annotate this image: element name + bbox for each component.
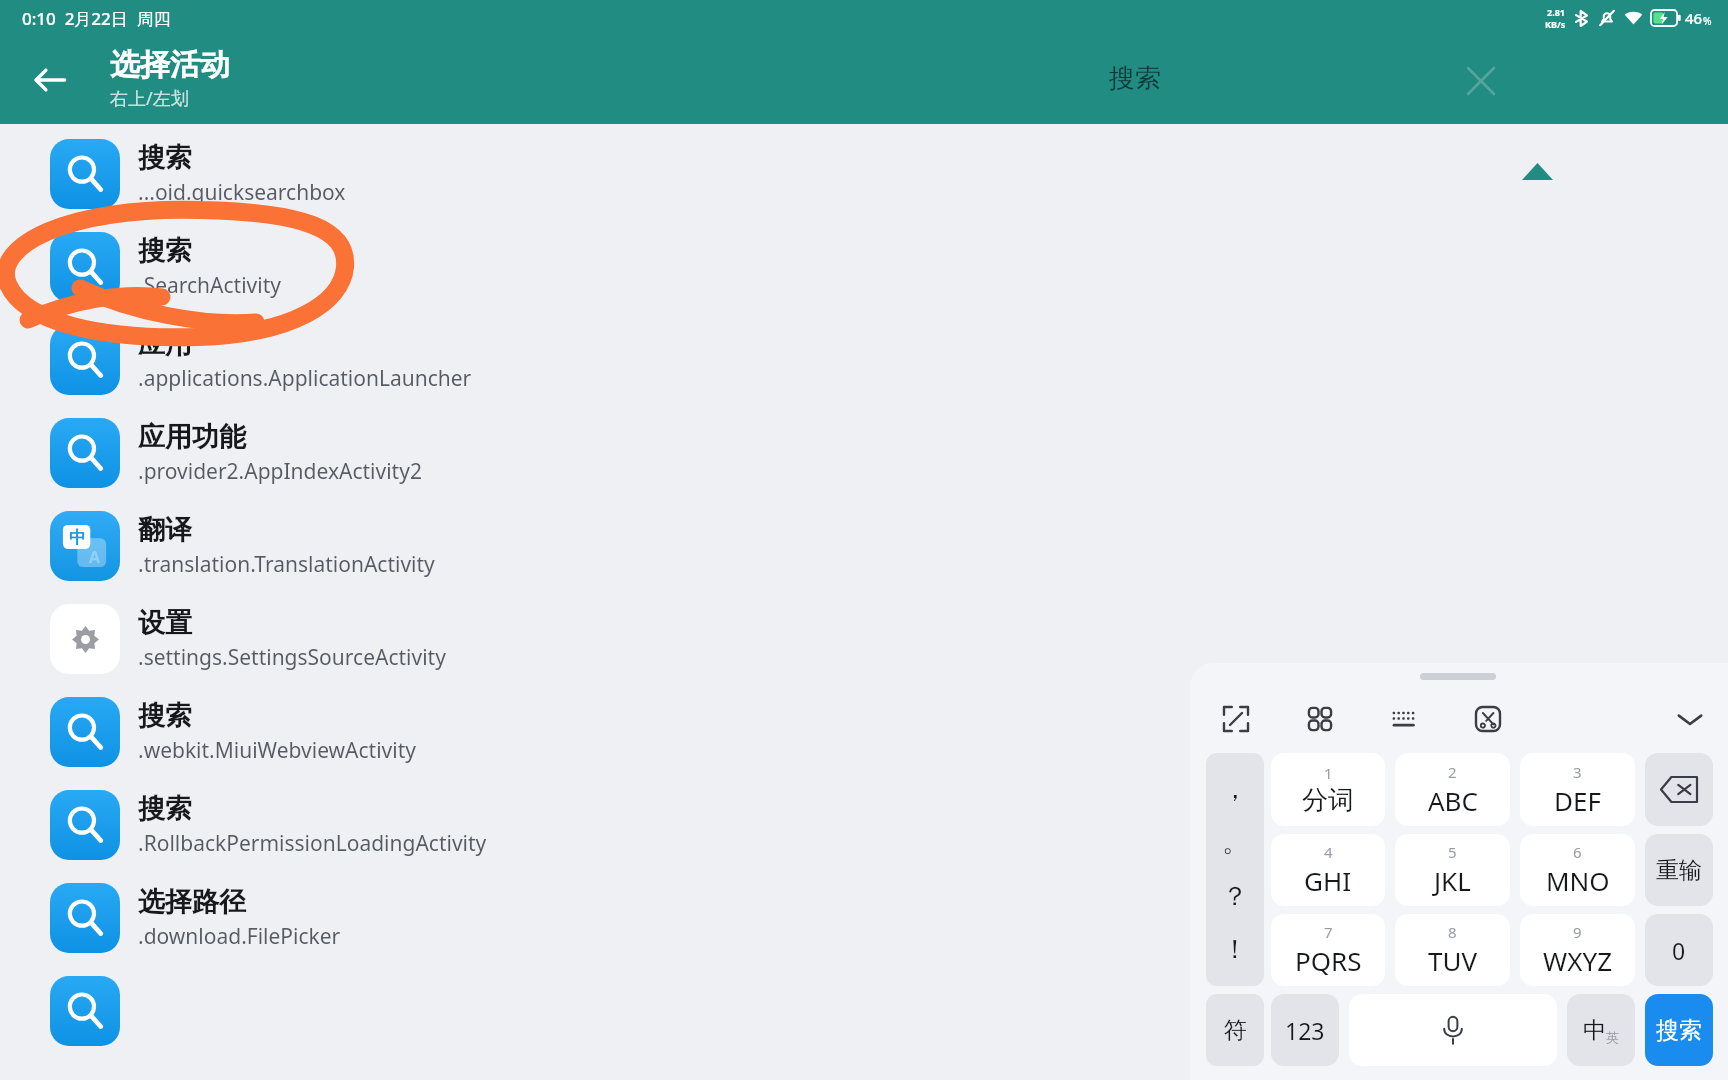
staticText: 搜索 <box>138 234 192 268</box>
staticText: .settings.SettingsSourceActivity <box>138 643 446 672</box>
button[interactable]: Voice input <box>1349 994 1557 1066</box>
button[interactable]: 8 <box>1395 914 1510 986</box>
staticText: % <box>1703 14 1712 28</box>
staticText: 6 <box>1573 842 1582 862</box>
staticText: 7 <box>1324 922 1333 942</box>
staticText: 搜索 <box>1109 62 1161 95</box>
button[interactable]: ， <box>1206 753 1264 986</box>
staticText: A <box>89 546 101 568</box>
staticText: 搜索 <box>138 699 192 733</box>
button[interactable]: 应用 <box>0 313 1728 406</box>
staticText: 搜索 <box>1656 1016 1702 1045</box>
button[interactable]: 6 <box>1520 834 1635 906</box>
staticText: 搜索 <box>138 792 192 826</box>
button[interactable]: Keyboard panels <box>1298 697 1342 741</box>
staticText: JKL <box>1434 863 1471 898</box>
button[interactable]: 应用功能 <box>0 406 1728 499</box>
staticText: 9 <box>1573 922 1582 942</box>
staticText: 选择活动 <box>110 46 230 84</box>
button[interactable]: 重输 <box>1645 834 1713 906</box>
staticText: 1 <box>1324 763 1333 783</box>
staticText: 3 <box>1573 762 1582 782</box>
staticText: .RollbackPermissionLoadingActivity <box>138 829 487 858</box>
staticText: 英 <box>1606 1029 1619 1045</box>
staticText: .provider2.AppIndexActivity2 <box>138 457 422 486</box>
staticText: 中 <box>1583 1016 1606 1045</box>
button[interactable]: 搜索 <box>0 127 1728 220</box>
button[interactable]: 选择路径 <box>0 871 1728 964</box>
button[interactable]: 0 <box>1645 914 1713 986</box>
staticText: ？ <box>1222 880 1248 913</box>
staticText: 5 <box>1448 842 1457 862</box>
button[interactable]: Backspace <box>1645 753 1713 826</box>
staticText: 重输 <box>1656 856 1702 885</box>
staticText: TUV <box>1428 943 1478 978</box>
button[interactable]: 7 <box>1271 914 1385 986</box>
button[interactable]: 中 <box>0 499 1728 592</box>
button[interactable]: 3 <box>1520 753 1635 826</box>
staticText: MNO <box>1546 863 1610 898</box>
staticText: ！ <box>1222 933 1248 966</box>
staticText: 选择路径 <box>138 885 246 919</box>
staticText: .applications.ApplicationLauncher <box>138 364 472 393</box>
button[interactable]: 符 <box>1206 994 1264 1066</box>
button[interactable]: 4 <box>1271 834 1385 906</box>
button[interactable]: 搜索 <box>0 220 1728 313</box>
staticText: PQRS <box>1295 943 1362 978</box>
button[interactable]: 搜索 <box>0 685 1728 778</box>
staticText: 搜索 <box>138 141 192 175</box>
staticText: 0:10 2月22日 周四 <box>22 7 171 30</box>
staticText: 4 <box>1324 842 1333 862</box>
staticText: .download.FilePicker <box>138 922 341 951</box>
button[interactable]: Hide keyboard <box>1666 695 1714 743</box>
staticText: DEF <box>1554 783 1601 818</box>
staticText: 翻译 <box>138 513 192 547</box>
staticText: 2 <box>1448 762 1457 782</box>
button[interactable]: 1 <box>1271 753 1385 826</box>
staticText: 2.81 <box>1547 6 1565 18</box>
staticText: 8 <box>1448 922 1457 942</box>
staticText: ...oid.quicksearchbox <box>138 178 346 207</box>
staticText: .translation.TranslationActivity <box>138 550 435 579</box>
staticText: ， <box>1222 773 1248 806</box>
staticText: KB/s <box>1545 18 1566 30</box>
staticText: 应用 <box>138 327 192 361</box>
button[interactable]: 9 <box>1520 914 1635 986</box>
staticText: ABC <box>1428 783 1478 818</box>
button[interactable]: Clear <box>1450 50 1512 112</box>
button[interactable]: Collapse <box>1510 152 1564 190</box>
button[interactable]: Resize keyboard <box>1214 697 1258 741</box>
button[interactable]: 搜索 <box>0 778 1728 871</box>
button[interactable]: 搜索 <box>1645 994 1713 1066</box>
staticText: 0 <box>1672 935 1686 966</box>
button[interactable]: Back <box>22 52 78 108</box>
staticText: 右上/左划 <box>110 86 189 111</box>
button[interactable]: 中 <box>1567 994 1635 1066</box>
button[interactable]: 设置 <box>0 592 1728 685</box>
staticText: 123 <box>1285 1015 1325 1046</box>
staticText: GHI <box>1304 863 1352 898</box>
staticText: 设置 <box>138 606 192 640</box>
staticText: 中 <box>69 527 86 548</box>
staticText: WXYZ <box>1543 943 1613 978</box>
staticText: 应用功能 <box>138 420 246 454</box>
button[interactable]: 123 <box>1271 994 1339 1066</box>
button[interactable] <box>0 964 1728 1057</box>
button[interactable]: 2 <box>1395 753 1510 826</box>
button[interactable]: 5 <box>1395 834 1510 906</box>
staticText: 分词 <box>1302 784 1354 817</box>
staticText: 46 <box>1685 8 1703 28</box>
button[interactable]: Switch keyboard <box>1382 697 1426 741</box>
staticText: 。 <box>1222 826 1248 859</box>
staticText: 符 <box>1224 1016 1247 1045</box>
button[interactable]: Clipboard <box>1466 697 1510 741</box>
staticText: .SearchActivity <box>138 271 281 300</box>
staticText: .webkit.MiuiWebviewActivity <box>138 736 416 765</box>
